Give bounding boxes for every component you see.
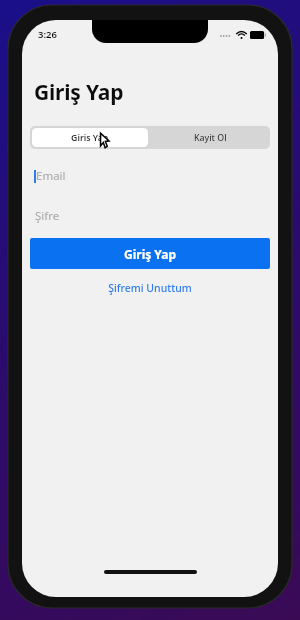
button[interactable]: Giriş Yap (30, 238, 270, 269)
button[interactable]: Kayit Ol (150, 126, 270, 149)
staticText: Giriş Yap (124, 246, 177, 262)
staticText: Giris Yap (71, 132, 109, 144)
staticText: Şifremi Unuttum (108, 281, 192, 295)
staticText: 3:26 (38, 28, 57, 41)
button[interactable]: Email (30, 163, 270, 189)
staticText: Şifre (35, 208, 60, 224)
button[interactable]: Giris Yap (32, 128, 148, 147)
other: Pointer (100, 133, 111, 148)
staticText: Email (36, 168, 66, 184)
button[interactable]: Şifremi Unuttum (98, 278, 202, 298)
staticText: Kayit Ol (194, 132, 227, 144)
staticText: Giriş Yap (34, 78, 124, 107)
button[interactable]: Şifre (30, 203, 270, 229)
